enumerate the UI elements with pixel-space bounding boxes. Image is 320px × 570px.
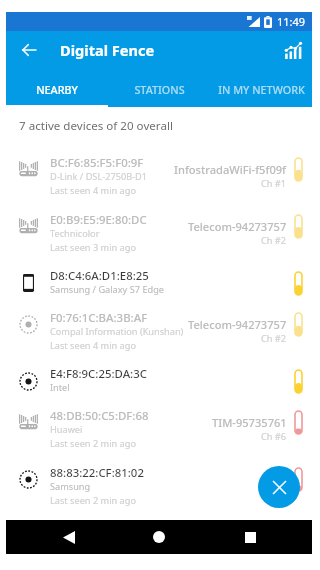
staticText: Ch #1	[261, 177, 287, 190]
button[interactable]: NEARBY	[6, 69, 108, 107]
staticText: Telecom-94273757	[188, 219, 287, 233]
staticText: Digital Fence	[60, 40, 155, 60]
staticText: E4:F8:9C:25:DA:3C	[50, 366, 147, 380]
button[interactable]: Home	[131, 520, 187, 554]
staticText: Huawei	[50, 423, 83, 436]
staticText: Last seen 4 min ago	[50, 339, 136, 352]
staticText: IN MY NETWORK	[218, 82, 305, 97]
staticText: 11:49	[277, 14, 306, 29]
staticText: Intel	[50, 381, 70, 394]
button[interactable]: D8:C4:6A:D1:E8:25	[6, 261, 312, 302]
button[interactable]: IN MY NETWORK	[210, 69, 312, 107]
staticText: Technicolor	[50, 227, 100, 240]
staticText: Last seen 2 min ago	[50, 494, 136, 507]
button[interactable]: Stop scanning	[258, 466, 300, 508]
staticText: 7 active devices of 20 overall	[19, 118, 173, 134]
staticText: Ch #6	[261, 430, 287, 443]
staticText: InfostradaWiFi-f5f09f	[174, 162, 287, 176]
button[interactable]: 48:DB:50:C5:DF:68	[6, 400, 312, 457]
staticText: 88:83:22:CF:81:02	[50, 465, 144, 479]
staticText: NEARBY	[36, 82, 78, 97]
staticText: F0:76:1C:BA:3B:AF	[50, 310, 148, 324]
button[interactable]: STATIONS	[108, 69, 210, 107]
staticText: TIM-95735761	[212, 415, 287, 429]
staticText: Samsung	[50, 480, 91, 493]
button[interactable]: E0:B9:E5:9E:80:DC	[6, 204, 312, 261]
button[interactable]: E4:F8:9C:25:DA:3C	[6, 359, 312, 400]
button[interactable]: Statistics	[274, 31, 312, 69]
staticText: Last seen 2 min ago	[50, 437, 136, 450]
staticText: Last seen 3 min ago	[50, 241, 136, 254]
button[interactable]: Back	[6, 31, 51, 69]
button[interactable]: F0:76:1C:BA:3B:AF	[6, 302, 312, 359]
button[interactable]: Recent apps	[222, 520, 278, 554]
button[interactable]: Back	[41, 520, 97, 554]
staticText: Compal Information (Kunshan)	[50, 325, 184, 338]
staticText: E0:B9:E5:9E:80:DC	[50, 212, 147, 226]
staticText: BC:F6:85:F5:F0:9F	[50, 155, 144, 169]
staticText: D8:C4:6A:D1:E8:25	[50, 268, 149, 282]
staticText: 48:DB:50:C5:DF:68	[50, 408, 149, 422]
staticText: Ch #2	[261, 332, 287, 345]
staticText: Ch #2	[261, 234, 287, 247]
staticText: STATIONS	[134, 82, 185, 97]
button[interactable]: 88:83:22:CF:81:02	[6, 457, 312, 514]
staticText: D-Link / DSL-2750B-D1	[50, 170, 148, 183]
staticText: Last seen 4 min ago	[50, 184, 136, 197]
staticText: Telecom-94273757	[188, 317, 287, 331]
button[interactable]: BC:F6:85:F5:F0:9F	[6, 147, 312, 204]
staticText: Samsung / Galaxy S7 Edge	[50, 283, 164, 296]
